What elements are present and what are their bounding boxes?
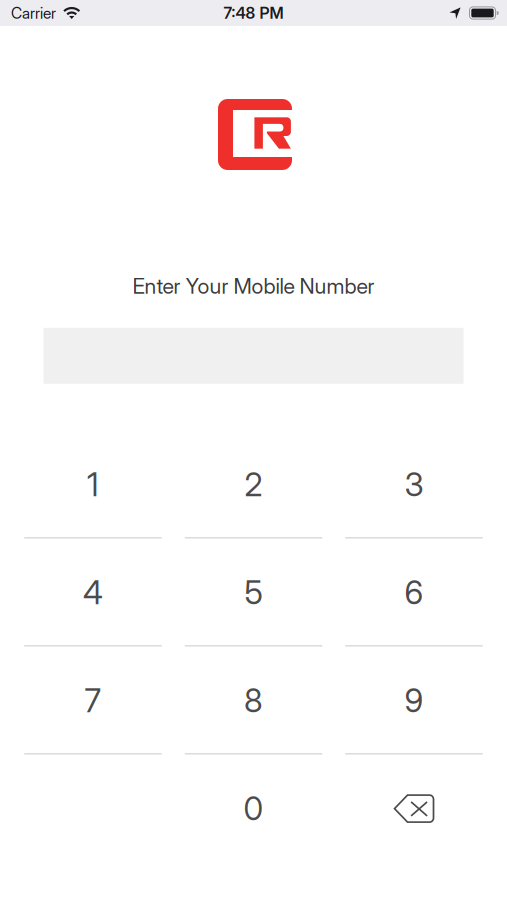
staticText: 7 xyxy=(84,681,101,720)
staticText: Carrier xyxy=(11,4,56,22)
staticText: Enter Your Mobile Number xyxy=(132,273,374,299)
staticText: 0 xyxy=(243,789,263,828)
button[interactable]: 9 xyxy=(345,647,483,755)
staticText: 4 xyxy=(83,573,103,612)
staticText: 7:48 PM xyxy=(223,3,283,23)
button[interactable]: 1 xyxy=(24,431,162,539)
staticText: 2 xyxy=(244,465,262,504)
button[interactable]: 8 xyxy=(185,647,322,755)
button[interactable]: 0 xyxy=(185,755,322,863)
staticText: 3 xyxy=(404,465,423,504)
button[interactable]: 2 xyxy=(185,431,322,539)
button[interactable]: 3 xyxy=(345,431,483,539)
button[interactable]: 5 xyxy=(185,539,322,647)
button[interactable]: Delete xyxy=(345,755,483,863)
button[interactable]: 7 xyxy=(24,647,162,755)
staticText: 8 xyxy=(244,681,263,720)
staticText: 6 xyxy=(404,573,423,612)
button[interactable]: 6 xyxy=(345,539,483,647)
staticText: 9 xyxy=(404,681,423,720)
staticText: 5 xyxy=(244,573,262,612)
staticText: 1 xyxy=(87,465,99,504)
button[interactable]: 4 xyxy=(24,539,162,647)
